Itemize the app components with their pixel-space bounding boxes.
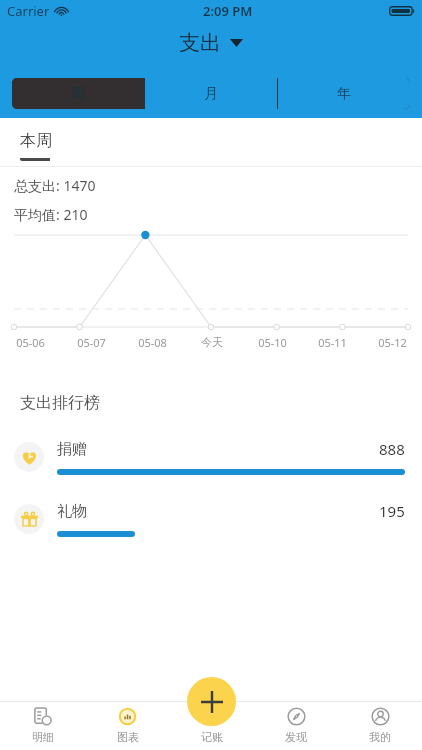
staticText: 记账 — [201, 730, 223, 744]
staticText: 捐赠 — [57, 440, 87, 459]
staticText: 888 — [379, 439, 405, 459]
button[interactable]: 月 — [145, 78, 277, 109]
button[interactable]: 支出 — [173, 27, 249, 59]
staticText: 总支出: 1470 — [14, 176, 96, 195]
button[interactable]: 记账 添加 — [187, 677, 236, 726]
staticText: 05-11 — [318, 335, 347, 350]
staticText: 05-12 — [378, 335, 407, 350]
button[interactable]: 图表 — [85, 701, 170, 750]
staticText: 支出 — [179, 30, 221, 56]
staticText: 本周 — [20, 131, 52, 151]
staticText: 支出排行榜 — [20, 393, 100, 413]
staticText: 05-07 — [77, 335, 106, 350]
button[interactable]: 年 — [278, 78, 410, 109]
staticText: 发现 — [285, 730, 307, 744]
staticText: 年 — [337, 85, 351, 103]
button[interactable]: 发现 — [254, 701, 338, 750]
staticText: 195 — [379, 501, 405, 521]
button[interactable]: 我的 — [338, 701, 422, 750]
staticText: 05-10 — [258, 335, 287, 350]
button[interactable]: 周 — [12, 78, 144, 109]
staticText: 礼物 — [57, 502, 87, 521]
staticText: 月 — [204, 85, 218, 103]
staticText: 05-06 — [16, 335, 45, 350]
staticText: 周 — [71, 85, 85, 103]
staticText: Carrier — [7, 2, 50, 20]
button[interactable]: 明细 — [0, 701, 85, 750]
staticText: 2:09 PM — [203, 2, 253, 20]
staticText: 平均值: 210 — [14, 205, 88, 224]
button[interactable]: 捐赠 — [0, 439, 422, 475]
staticText: 我的 — [369, 730, 391, 744]
button[interactable]: 礼物 — [0, 501, 422, 537]
staticText: 今天 — [201, 335, 223, 349]
staticText: 明细 — [32, 730, 54, 744]
button[interactable]: 本周 — [20, 131, 52, 161]
staticText: 图表 — [117, 730, 139, 744]
button[interactable]: 记账 — [170, 701, 254, 750]
staticText: 05-08 — [138, 335, 167, 350]
